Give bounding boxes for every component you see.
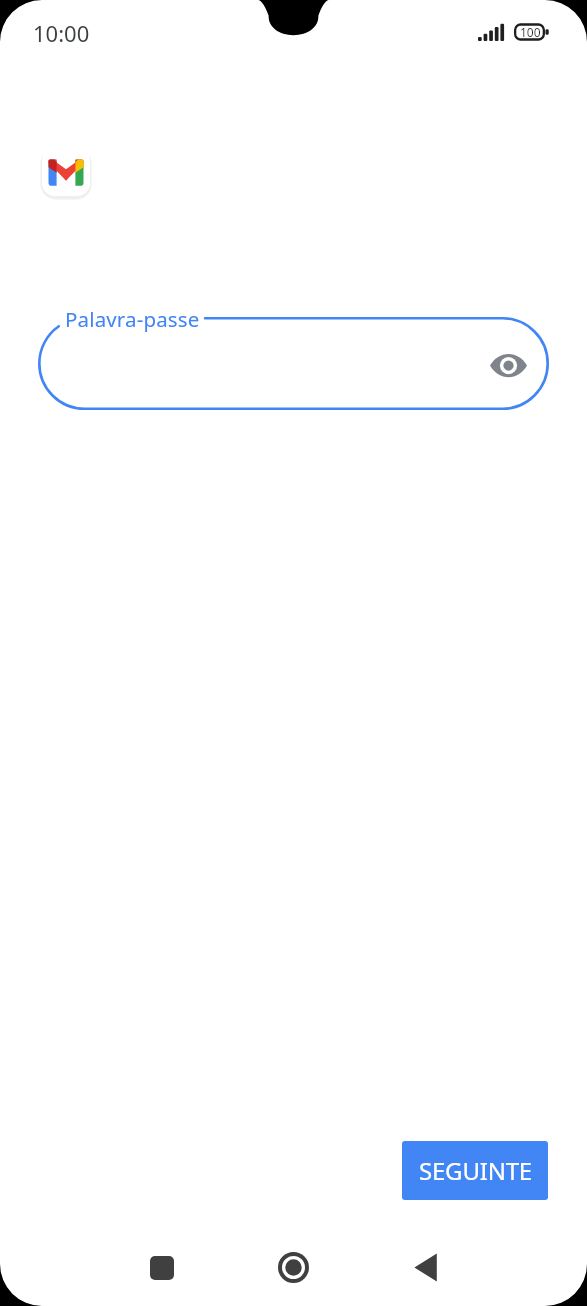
- staticText: 10:00: [33, 18, 90, 48]
- button[interactable]: Back: [393, 1235, 458, 1300]
- button[interactable]: Home: [261, 1235, 326, 1300]
- button[interactable]: Palavra-passe: [38, 317, 549, 410]
- button[interactable]: SEGUINTE: [402, 1141, 548, 1200]
- button[interactable]: Recents: [129, 1235, 194, 1300]
- staticText: SEGUINTE: [419, 1154, 532, 1187]
- staticText: Palavra-passe: [65, 305, 200, 333]
- button[interactable]: Mostrar palavra-passe: [484, 341, 532, 389]
- staticText: 100: [520, 24, 541, 40]
